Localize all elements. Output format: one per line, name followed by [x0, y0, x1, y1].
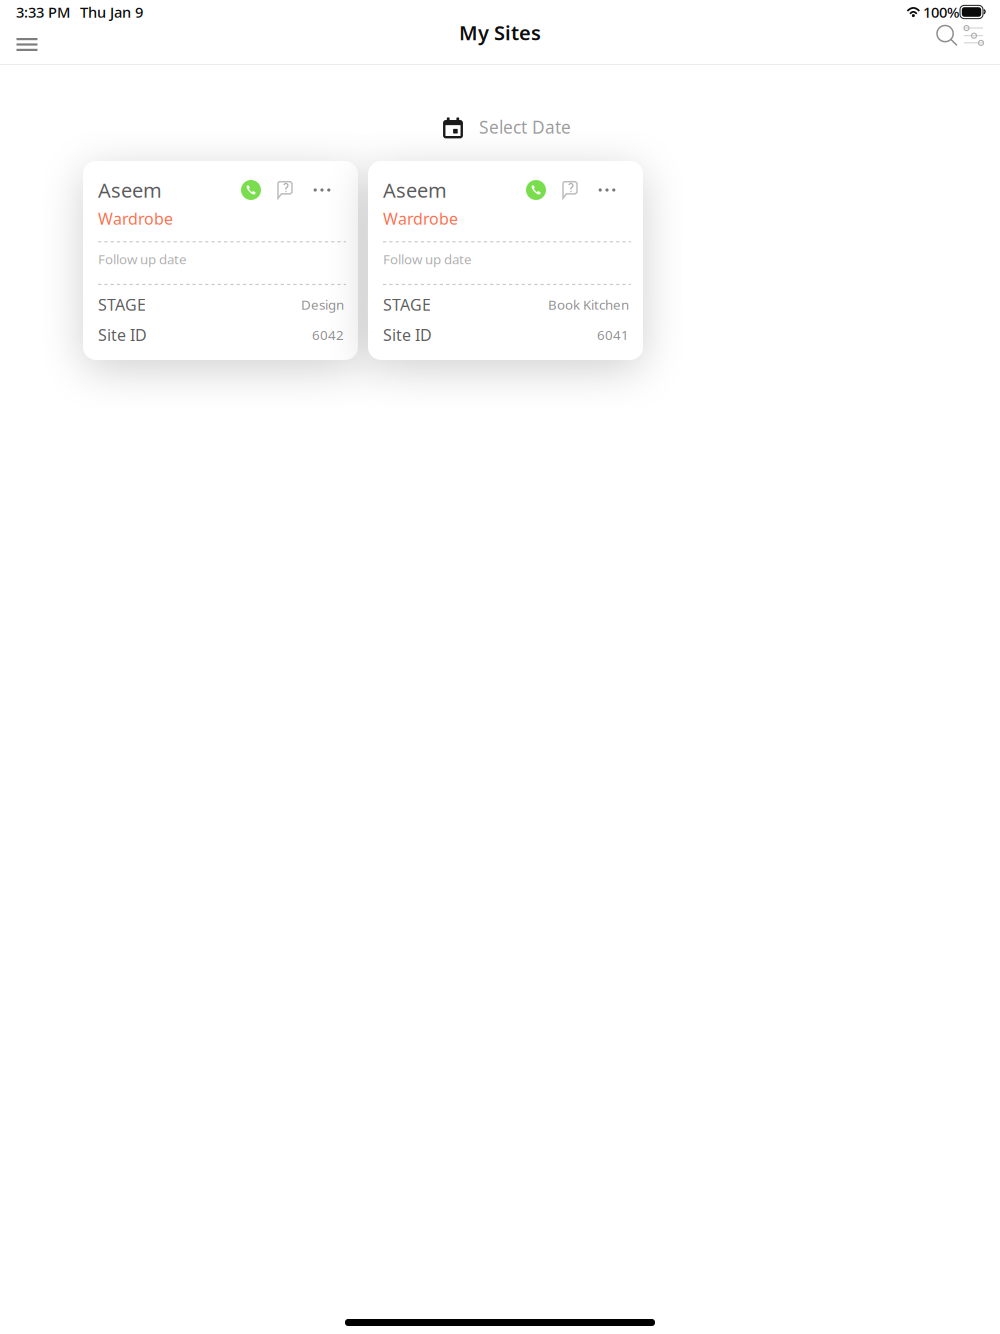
staticText: STAGE: [383, 294, 431, 315]
staticText: Follow up date: [383, 250, 472, 268]
staticText: Wardrobe: [98, 208, 173, 229]
button[interactable]: Raise query: [553, 177, 591, 203]
staticText: STAGE: [98, 294, 146, 315]
button[interactable]: Raise query: [268, 177, 306, 203]
staticText: 6041: [597, 326, 629, 344]
button[interactable]: Select Date: [429, 106, 571, 148]
staticText: Design: [301, 296, 344, 313]
button[interactable]: Call: [234, 177, 268, 203]
staticText: Aseem: [98, 177, 162, 203]
button[interactable]: Menu: [8, 24, 46, 65]
staticText: 100%: [923, 2, 959, 22]
staticText: My Sites: [459, 19, 541, 46]
staticText: 3:33 PM: [16, 2, 70, 22]
button[interactable]: Search: [932, 24, 962, 65]
button[interactable]: More options: [591, 177, 623, 203]
staticText: Site ID: [98, 324, 147, 345]
staticText: Book Kitchen: [548, 296, 629, 313]
staticText: 6042: [312, 326, 344, 344]
staticText: Aseem: [383, 177, 447, 203]
button[interactable]: Call: [519, 177, 553, 203]
staticText: Select Date: [479, 115, 571, 138]
staticText: Site ID: [383, 324, 432, 345]
button[interactable]: Filter: [962, 24, 989, 65]
staticText: Follow up date: [98, 250, 187, 268]
staticText: Thu Jan 9: [80, 2, 143, 22]
button[interactable]: More options: [306, 177, 338, 203]
staticText: Wardrobe: [383, 208, 458, 229]
